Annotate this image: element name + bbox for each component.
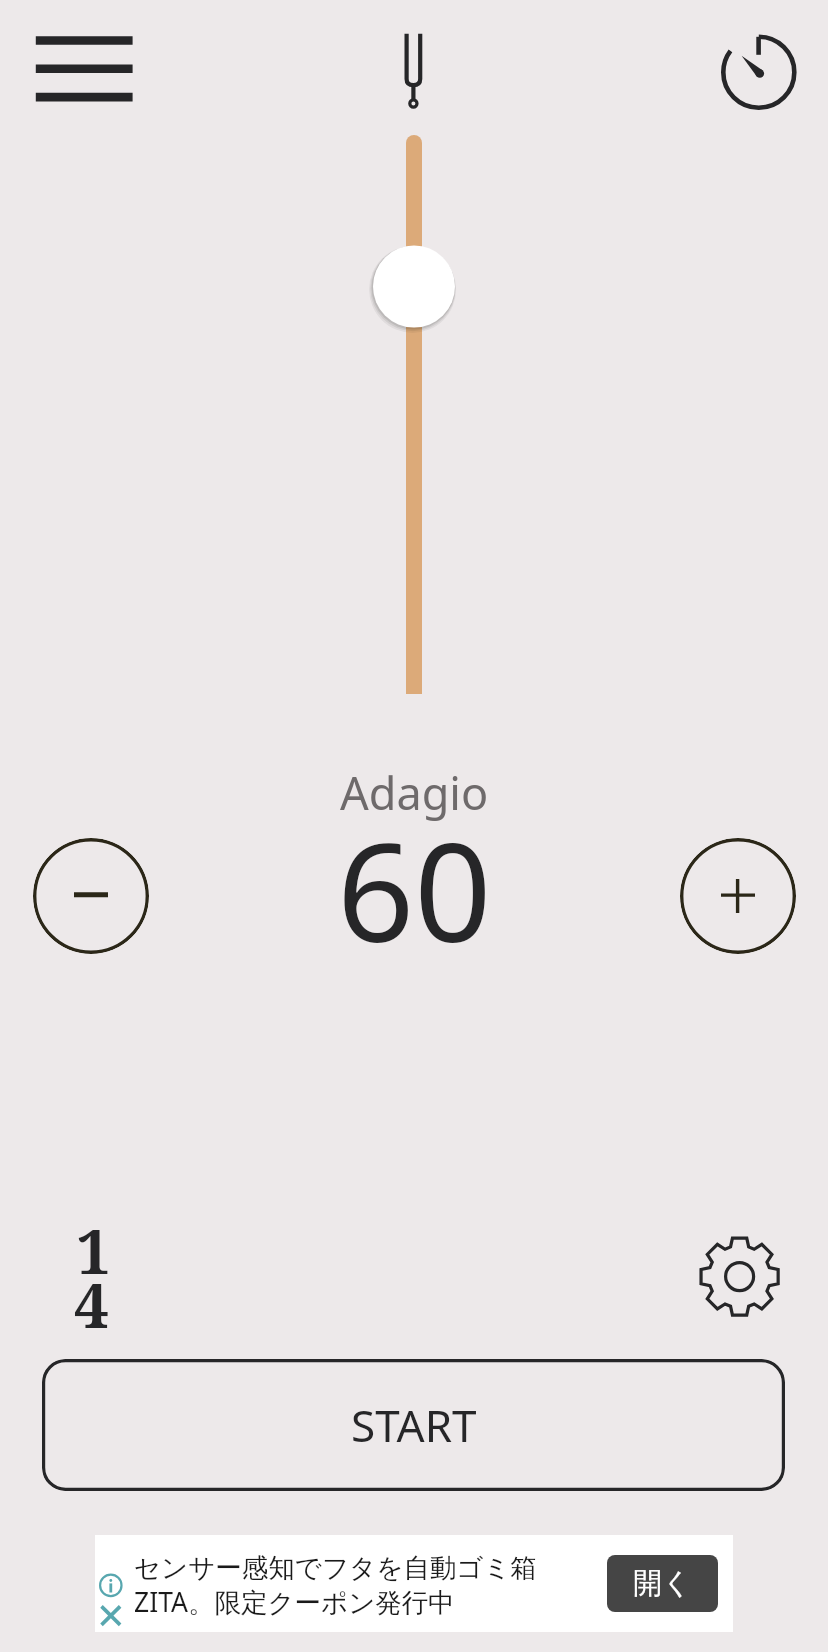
staticText: センサー感知でフタを自動ゴミ箱 xyxy=(134,1551,538,1584)
staticText: 開く xyxy=(633,1565,692,1602)
button[interactable]: 開く xyxy=(607,1555,718,1612)
button[interactable]: Tuner xyxy=(374,16,454,126)
button[interactable]: Increase tempo xyxy=(680,838,796,954)
staticText: 1 xyxy=(76,1208,112,1292)
button[interactable]: Tempo weight xyxy=(369,241,461,333)
button[interactable]: センサー感知でフタを自動ゴミ箱 xyxy=(95,1535,733,1632)
button[interactable]: Decrease tempo xyxy=(33,838,149,954)
button[interactable]: Ad info xyxy=(96,1570,130,1628)
button[interactable]: Time signature xyxy=(45,1210,145,1340)
button[interactable]: Menu xyxy=(8,8,160,132)
staticText: START xyxy=(351,1395,477,1455)
staticText: Adagio xyxy=(340,762,489,823)
staticText: 4 xyxy=(74,1262,110,1346)
button[interactable]: Timer xyxy=(706,20,812,126)
button[interactable]: Settings xyxy=(694,1232,784,1322)
staticText: ZITA。限定クーポン発行中 xyxy=(134,1584,455,1620)
staticText: 60 xyxy=(337,798,492,982)
button[interactable]: START xyxy=(42,1359,785,1491)
